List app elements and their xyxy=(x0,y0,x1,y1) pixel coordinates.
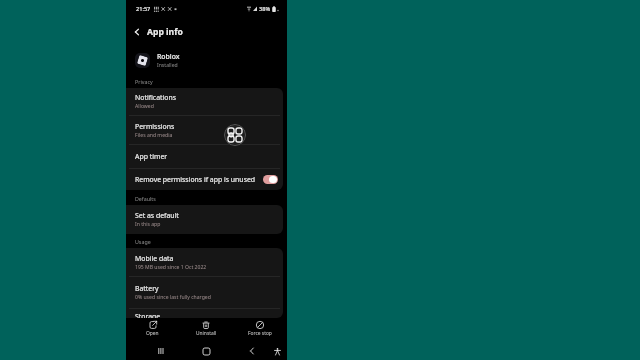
staticText: In this app xyxy=(135,221,161,228)
staticText: Uninstall xyxy=(196,330,217,337)
staticText: Mobile data xyxy=(135,254,174,263)
staticText: 38% xyxy=(259,5,271,13)
staticText: Storage xyxy=(135,312,161,318)
button[interactable]: Mobile data xyxy=(126,248,283,276)
staticText: Notifications xyxy=(135,93,176,102)
staticText: Remove permissions if app is unused xyxy=(135,175,256,184)
staticText: Privacy xyxy=(135,78,153,85)
staticText: Battery xyxy=(135,284,159,293)
button[interactable] xyxy=(263,175,278,184)
button[interactable]: Permissions xyxy=(126,116,283,144)
button[interactable]: Accessibility xyxy=(271,345,283,357)
staticText: Defaults xyxy=(135,195,156,202)
button[interactable]: Notifications xyxy=(126,88,283,115)
button[interactable]: Navigate up xyxy=(126,21,147,42)
button[interactable]: Battery xyxy=(126,277,283,308)
staticText: Files and media xyxy=(135,132,173,139)
staticText: Force stop xyxy=(248,330,272,337)
button[interactable]: Back xyxy=(245,344,259,358)
staticText: 0% used since last fully charged xyxy=(135,294,211,301)
button[interactable]: Storage xyxy=(126,309,283,318)
button[interactable]: Remove permissions if app is unused xyxy=(126,169,283,190)
staticText: App timer xyxy=(135,152,168,161)
button[interactable]: Assistant menu xyxy=(224,124,246,146)
button[interactable]: Home xyxy=(199,344,213,358)
staticText: Allowed xyxy=(135,103,154,110)
button[interactable]: Set as default xyxy=(126,205,283,234)
button[interactable]: Open xyxy=(126,318,179,342)
button[interactable]: Uninstall xyxy=(179,318,233,342)
staticText: Installed xyxy=(157,62,178,69)
staticText: Set as default xyxy=(135,211,179,220)
button[interactable]: Roblox xyxy=(126,45,287,72)
button[interactable]: App timer xyxy=(126,145,283,168)
staticText: 195 MB used since 1 Oct 2022 xyxy=(135,264,207,271)
staticText: 21:57 xyxy=(136,5,151,13)
staticText: Roblox xyxy=(157,52,180,61)
button[interactable]: Force stop xyxy=(233,318,287,342)
staticText: Usage xyxy=(135,238,151,245)
button[interactable]: Recent apps xyxy=(154,344,168,358)
staticText: App info xyxy=(147,26,183,38)
staticText: Open xyxy=(146,330,159,337)
staticText: Permissions xyxy=(135,122,175,131)
